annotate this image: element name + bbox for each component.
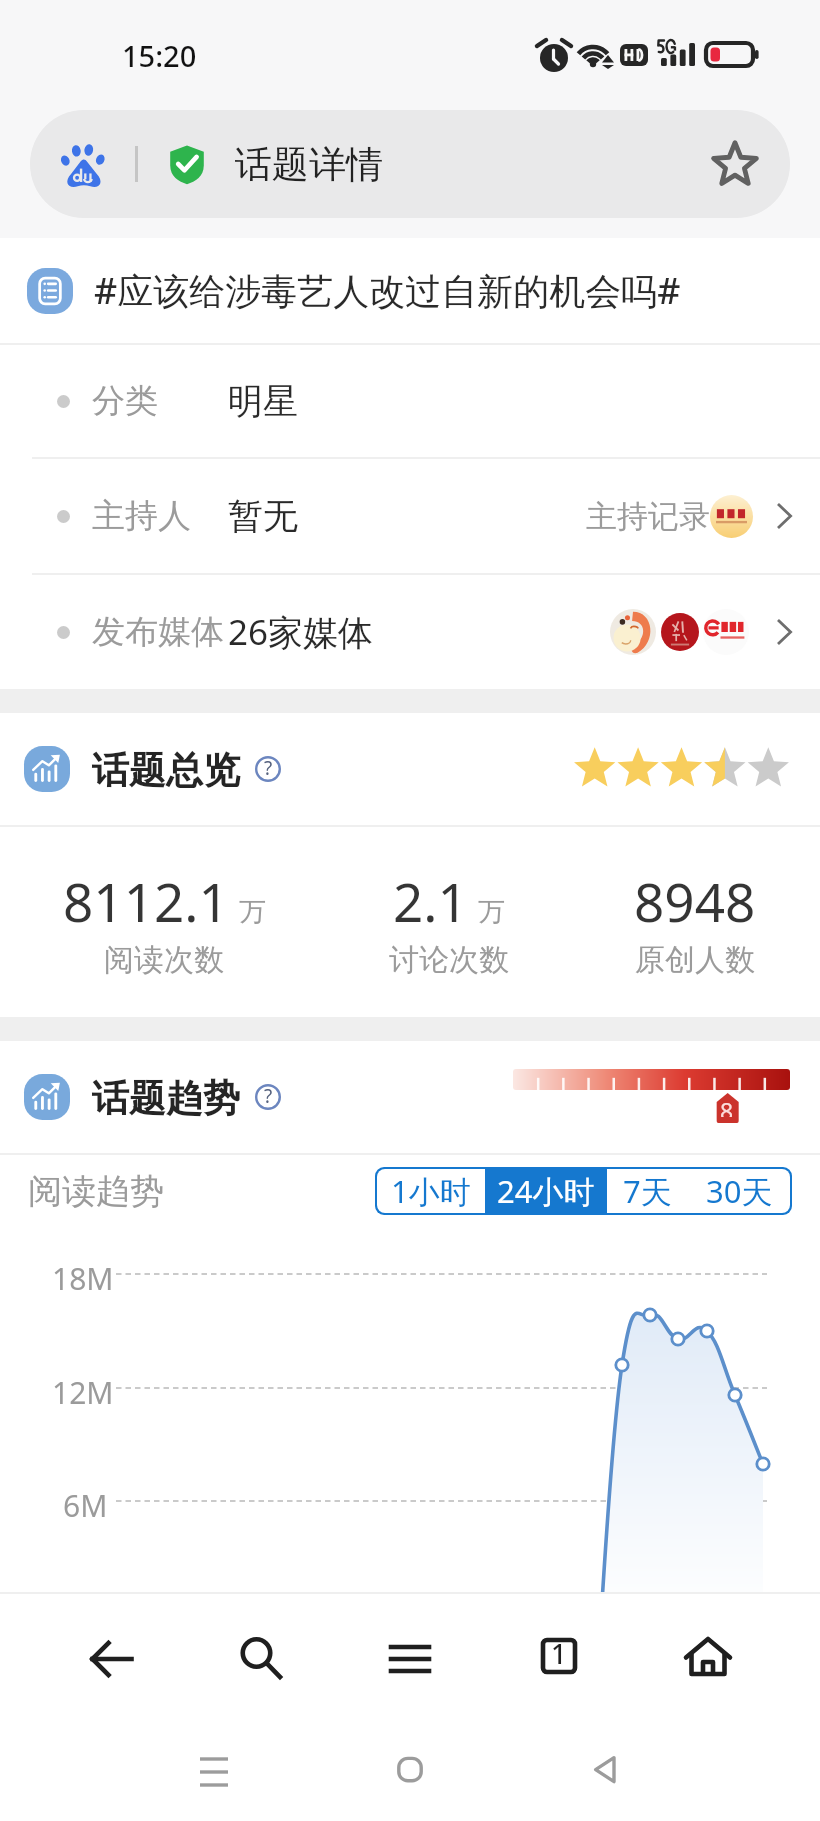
staticText: 万 (239, 895, 266, 929)
button[interactable]: 主持人 (0, 459, 820, 573)
staticText: 2.1 (393, 865, 468, 937)
button[interactable]: Help (255, 756, 281, 782)
staticText: ? (264, 755, 273, 781)
staticText: 万 (478, 895, 505, 929)
button[interactable]: Back (508, 1723, 704, 1821)
button[interactable]: 1小时 (377, 1169, 485, 1213)
staticText: 6M (63, 1485, 108, 1526)
button[interactable]: Home (312, 1723, 508, 1821)
button[interactable]: 30天 (688, 1169, 790, 1213)
staticText: 暂无 (228, 494, 298, 538)
staticText: 26家媒体 (228, 608, 374, 656)
staticText: 阅读趋势 (28, 1170, 164, 1213)
button[interactable]: 7天 (607, 1169, 688, 1213)
button[interactable]: 24小时 (485, 1169, 607, 1213)
button[interactable]: 话题详情 (30, 110, 790, 218)
button[interactable]: Recents (116, 1723, 312, 1821)
staticText: 8948 (634, 865, 756, 937)
staticText: 30天 (706, 1170, 773, 1212)
button[interactable]: Search (186, 1594, 335, 1723)
staticText: 分类 (92, 380, 158, 422)
staticText: 明星 (228, 379, 298, 423)
staticText: 8112.1 (63, 865, 229, 937)
button[interactable]: 发布媒体 (0, 575, 820, 689)
button[interactable]: #应该给涉毒艺人改过自新的机会吗# (0, 238, 820, 343)
button[interactable]: Home (633, 1594, 782, 1723)
staticText: 主持人 (92, 495, 191, 537)
staticText: 话题详情 (235, 141, 383, 188)
staticText: 15:20 (122, 36, 197, 75)
button[interactable]: Back (38, 1594, 186, 1723)
staticText: 阅读次数 (104, 941, 224, 979)
staticText: 原创人数 (635, 941, 755, 979)
staticText: 7天 (623, 1170, 672, 1212)
button[interactable]: Favorite (700, 129, 770, 199)
button[interactable]: Tabs (484, 1594, 633, 1723)
staticText: 讨论次数 (389, 941, 509, 979)
button[interactable]: 分类 (0, 345, 820, 457)
staticText: 发布媒体 (92, 611, 224, 653)
staticText: 8 (720, 1095, 734, 1117)
staticText: ? (264, 1083, 273, 1109)
staticText: 话题总览 (92, 747, 240, 794)
staticText: #应该给涉毒艺人改过自新的机会吗# (94, 266, 681, 315)
staticText: 主持记录 (586, 497, 710, 536)
staticText: 1 (551, 1635, 567, 1672)
staticText: 1小时 (391, 1170, 471, 1212)
button[interactable]: Menu (335, 1594, 484, 1723)
staticText: 话题趋势 (92, 1075, 240, 1122)
button[interactable]: Help (255, 1084, 281, 1110)
staticText: 24小时 (497, 1170, 595, 1212)
staticText: 12M (52, 1372, 114, 1413)
staticText: 18M (52, 1258, 114, 1299)
